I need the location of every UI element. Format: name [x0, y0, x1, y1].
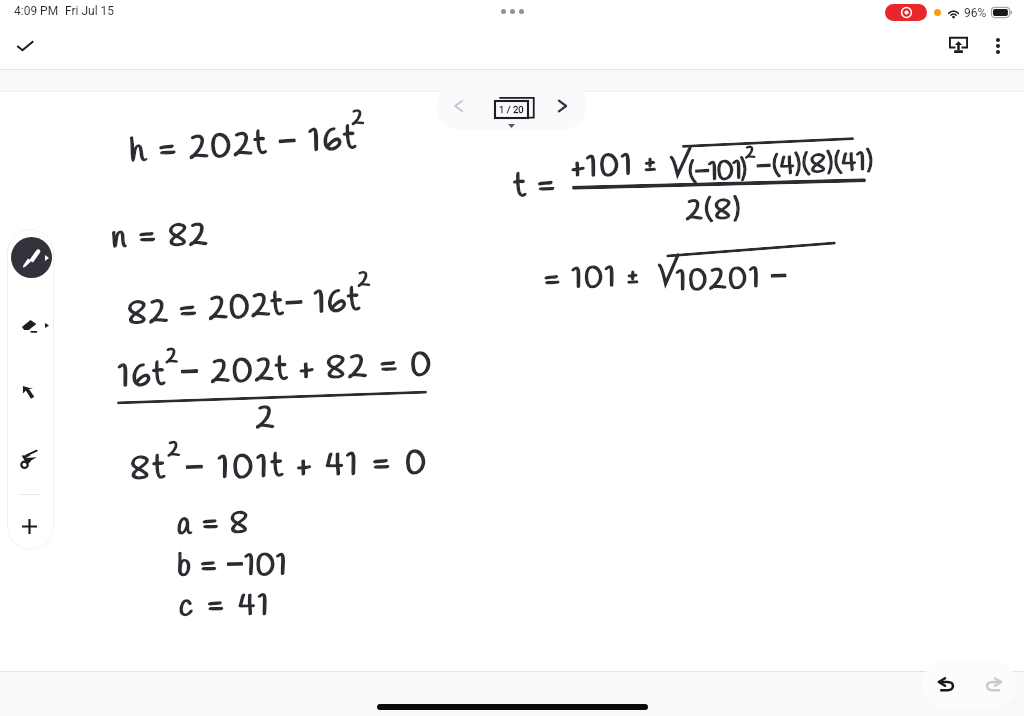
staticText: b = −101 — [177, 541, 288, 589]
button[interactable]: Pen — [11, 237, 52, 278]
button[interactable]: Previous page — [441, 89, 475, 123]
staticText: a = 8 — [177, 503, 250, 545]
staticText: 82 = 202t− 16t — [126, 275, 363, 338]
staticText: 2(8) — [686, 192, 743, 231]
staticText: 2 — [167, 436, 184, 464]
staticText: 16t — [117, 354, 168, 399]
staticText: − 202t + 82 = 0 — [179, 339, 435, 397]
staticText: 2 — [256, 398, 276, 441]
staticText: n = 82 — [110, 215, 210, 260]
staticText: 8t — [130, 447, 170, 492]
button[interactable]: Undo — [922, 661, 970, 708]
staticText: 2(8) — [686, 192, 743, 231]
staticText: a = 8 — [177, 503, 250, 545]
staticText: Fri Jul 15 — [65, 4, 115, 18]
staticText: 2 — [357, 265, 372, 294]
staticText: = 101 ± — [542, 257, 643, 301]
staticText: 10201 − — [675, 254, 791, 302]
button[interactable]: Add tool — [10, 507, 48, 545]
button[interactable]: Next page — [545, 89, 579, 123]
staticText: − 101t + 41 = 0 — [184, 438, 431, 493]
staticText: 2 — [256, 398, 276, 441]
staticText: − 202t + 82 = 0 — [179, 339, 435, 397]
staticText: 8t — [130, 447, 170, 492]
staticText: h = 202t − 16t — [128, 113, 359, 176]
staticText: (−101) — [687, 149, 747, 192]
staticText: n = 82 — [110, 215, 210, 260]
staticText: +101 ± — [570, 144, 660, 189]
staticText: t = — [513, 164, 559, 210]
staticText: −(4)(8)(41) — [755, 140, 875, 186]
staticText: 2 — [745, 142, 755, 165]
staticText: 10201 − — [675, 254, 791, 302]
staticText: c = 41 — [179, 585, 272, 627]
staticText: 2 — [357, 265, 372, 294]
staticText: −(4)(8)(41) — [755, 140, 875, 186]
button[interactable]: Page thumbnails — [494, 100, 529, 119]
button[interactable]: Select — [10, 373, 48, 411]
staticText: 4:09 PM — [14, 4, 59, 18]
staticText: 2 — [165, 342, 181, 371]
staticText: +101 ± — [570, 144, 660, 189]
staticText: 2 — [165, 342, 181, 371]
staticText: h = 202t − 16t — [128, 113, 359, 176]
staticText: = 101 ± — [542, 257, 643, 301]
button[interactable]: Laser pointer — [10, 440, 48, 478]
button[interactable]: Present to all — [938, 24, 978, 64]
staticText: 96% — [964, 6, 987, 20]
staticText: b = −101 — [177, 541, 288, 589]
staticText: (−101) — [687, 149, 747, 192]
staticText: 16t — [117, 354, 168, 399]
button[interactable]: Eraser — [10, 306, 48, 344]
staticText: 1 / 20 — [499, 104, 524, 115]
staticText: 82 = 202t− 16t — [126, 275, 363, 338]
staticText: 2 — [351, 104, 367, 132]
staticText: c = 41 — [179, 585, 272, 627]
button[interactable]: More options — [979, 27, 1017, 65]
button[interactable]: Done — [6, 27, 44, 65]
staticText: t = — [513, 164, 559, 210]
button[interactable]: Redo — [970, 661, 1017, 708]
staticText: 2 — [745, 142, 755, 165]
staticText: 2 — [351, 104, 367, 132]
staticText: 2 — [167, 436, 184, 464]
staticText: − 101t + 41 = 0 — [184, 438, 431, 493]
